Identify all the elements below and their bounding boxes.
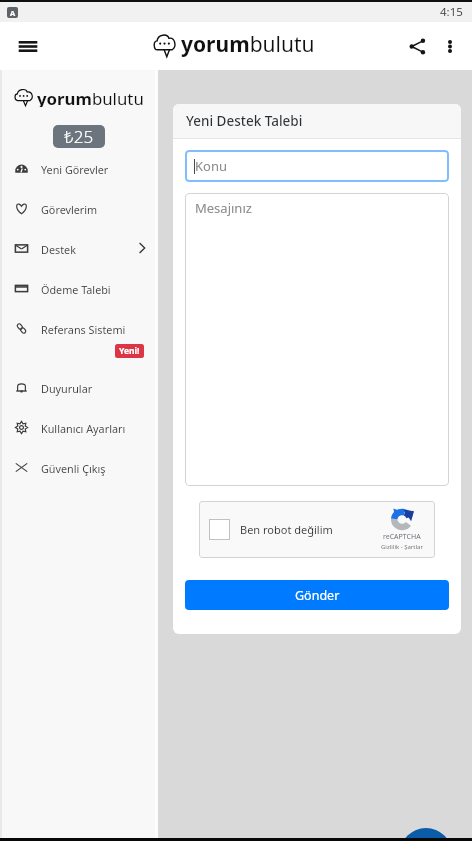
staticText: Duyurular <box>41 381 93 396</box>
button[interactable]: Mesajınız <box>195 199 449 486</box>
staticText: 4:15 <box>440 4 463 20</box>
staticText: A <box>10 8 16 18</box>
button[interactable]: Kullanıcı Ayarları <box>0 407 158 447</box>
button[interactable]: Menu <box>10 28 46 64</box>
staticText: yorumbulutu <box>37 87 144 107</box>
button[interactable]: More options <box>435 29 464 63</box>
staticText: Gizlilik - Şartlar <box>381 543 423 551</box>
button[interactable]: Yeni Görevler <box>0 148 158 188</box>
staticText: yorumbulutu <box>181 30 315 59</box>
button[interactable]: Yeni <box>400 828 452 841</box>
staticText: Ödeme Talebi <box>41 282 111 297</box>
staticText: Referans Sistemi <box>41 322 126 337</box>
staticText: reCAPTCHA <box>383 532 421 542</box>
button[interactable]: Güvenli Çıkış <box>0 447 158 487</box>
button[interactable]: Share <box>399 28 435 64</box>
staticText: Güvenli Çıkış <box>41 461 106 476</box>
button[interactable]: Gönder <box>185 580 449 610</box>
button[interactable]: Duyurular <box>0 367 158 407</box>
button[interactable]: Destek <box>0 228 158 268</box>
staticText: Yeni Destek Talebi <box>186 112 303 130</box>
staticText: Kullanıcı Ayarları <box>41 421 126 436</box>
button[interactable]: Ben robot değilim <box>209 519 230 540</box>
staticText: Görevlerim <box>41 202 98 217</box>
button[interactable]: ₺25 <box>53 125 105 148</box>
button[interactable]: Konu <box>194 150 449 182</box>
staticText: Yeni Görevler <box>41 162 109 177</box>
staticText: Ben robot değilim <box>240 522 333 537</box>
staticText: Mesajınız <box>195 199 252 217</box>
staticText: Gönder <box>295 587 340 604</box>
staticText: Konu <box>195 157 227 175</box>
staticText: Destek <box>41 242 76 257</box>
button[interactable]: Ödeme Talebi <box>0 268 158 308</box>
staticText: Yeni! <box>119 345 140 357</box>
button[interactable]: Görevlerim <box>0 188 158 228</box>
staticText: ₺25 <box>64 125 94 148</box>
button[interactable]: Referans Sistemi <box>0 308 158 348</box>
